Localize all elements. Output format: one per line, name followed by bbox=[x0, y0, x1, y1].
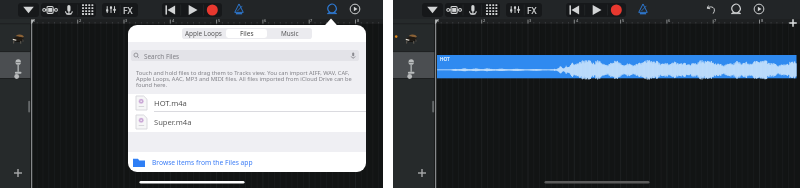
button[interactable]: Metronome bbox=[635, 1, 651, 17]
button[interactable]: Mixer and FX bbox=[506, 3, 542, 17]
button[interactable]: Loop browser bbox=[324, 1, 340, 17]
button[interactable]: Search Files bbox=[131, 50, 359, 61]
button[interactable]: Metronome bbox=[231, 1, 247, 17]
staticText: 3 bbox=[529, 18, 532, 23]
staticText: 7 bbox=[310, 18, 313, 23]
staticText: FX bbox=[527, 5, 537, 17]
staticText: Music bbox=[281, 29, 299, 38]
staticText: 6 bbox=[264, 18, 267, 23]
staticText: Browse items from the Files app bbox=[152, 158, 253, 167]
button[interactable]: Loop browser bbox=[728, 1, 744, 17]
button[interactable]: Mixer and FX bbox=[102, 3, 138, 17]
staticText: 1 bbox=[33, 18, 36, 23]
staticText: 14 bbox=[635, 18, 640, 23]
staticText: 6 bbox=[668, 18, 671, 23]
staticText: 11 bbox=[496, 18, 501, 23]
button[interactable]: Music bbox=[268, 28, 312, 39]
button[interactable]: Add track bbox=[11, 166, 25, 180]
staticText: 4 bbox=[576, 18, 579, 23]
button[interactable]: Settings bbox=[751, 1, 767, 17]
button[interactable]: Add section bbox=[787, 17, 799, 29]
staticText: 3 bbox=[125, 18, 128, 23]
staticText: HOT bbox=[440, 56, 450, 62]
staticText: 15 bbox=[681, 18, 686, 23]
staticText: Search Files bbox=[144, 52, 180, 61]
staticText: 8 bbox=[357, 18, 360, 23]
button[interactable]: Settings bbox=[347, 1, 363, 17]
staticText: 12 bbox=[542, 18, 547, 23]
staticText: Super.m4a bbox=[154, 117, 192, 127]
staticText: Apple Loops bbox=[185, 29, 222, 38]
button[interactable]: Browse items from the Files app bbox=[128, 152, 366, 172]
staticText: 2 bbox=[79, 18, 82, 23]
button[interactable]: Navigation menu bbox=[18, 3, 39, 17]
button[interactable]: Undo bbox=[704, 1, 720, 17]
staticText: Touch and hold files to drag them to Tra… bbox=[136, 69, 352, 88]
button[interactable]: Apple Loops bbox=[182, 28, 225, 39]
staticText: FX bbox=[123, 5, 133, 17]
button[interactable]: HOT.m4a bbox=[128, 94, 366, 111]
button[interactable]: Transport controls bbox=[566, 3, 626, 17]
staticText: 10 bbox=[449, 18, 454, 23]
staticText: 16 bbox=[727, 18, 732, 23]
button[interactable]: Navigation menu bbox=[422, 3, 443, 17]
button[interactable]: Transport controls bbox=[162, 3, 222, 17]
staticText: 2 bbox=[483, 18, 486, 23]
staticText: 5 bbox=[218, 18, 221, 23]
button[interactable]: Instruments bbox=[445, 3, 500, 17]
staticText: 4 bbox=[172, 18, 175, 23]
button[interactable]: HOT bbox=[437, 55, 800, 188]
button[interactable]: Add track bbox=[415, 166, 429, 180]
staticText: 17 bbox=[774, 18, 779, 23]
staticText: 13 bbox=[588, 18, 593, 23]
button[interactable]: Instruments bbox=[41, 3, 96, 17]
staticText: 1 bbox=[437, 18, 440, 23]
staticText: 5 bbox=[622, 18, 625, 23]
staticText: HOT.m4a bbox=[154, 98, 187, 108]
staticText: Files bbox=[240, 29, 254, 38]
staticText: 8 bbox=[761, 18, 764, 23]
button[interactable]: Files bbox=[226, 29, 267, 38]
button[interactable]: Super.m4a bbox=[128, 112, 366, 132]
staticText: 7 bbox=[714, 18, 717, 23]
